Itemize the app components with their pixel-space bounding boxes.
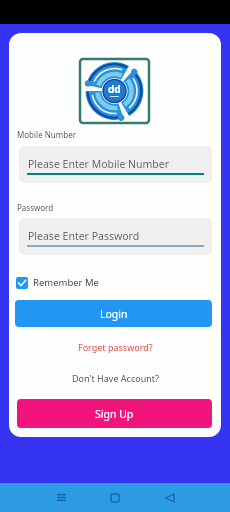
button[interactable]: Remember Me xyxy=(16,276,99,289)
button[interactable] xyxy=(101,483,129,512)
staticText: Please Enter Password xyxy=(28,229,140,243)
button[interactable]: Please Enter Password xyxy=(19,218,212,255)
button[interactable]: Sign Up xyxy=(17,399,212,428)
staticText: Password xyxy=(17,202,54,213)
staticText: dd xyxy=(108,82,121,96)
button[interactable] xyxy=(156,483,184,512)
staticText: Mobile Number xyxy=(17,129,76,140)
button[interactable]: Please Enter Mobile Number xyxy=(19,146,212,183)
staticText: Don't Have Account? xyxy=(72,372,159,384)
staticText: Remember Me xyxy=(33,276,99,289)
staticText: Login xyxy=(100,307,128,321)
staticText: Please Enter Mobile Number xyxy=(28,157,170,171)
staticText: Sign Up xyxy=(95,407,134,421)
button[interactable]: Login xyxy=(15,300,212,327)
button[interactable] xyxy=(47,483,75,512)
button[interactable]: Forget password? xyxy=(78,341,153,353)
